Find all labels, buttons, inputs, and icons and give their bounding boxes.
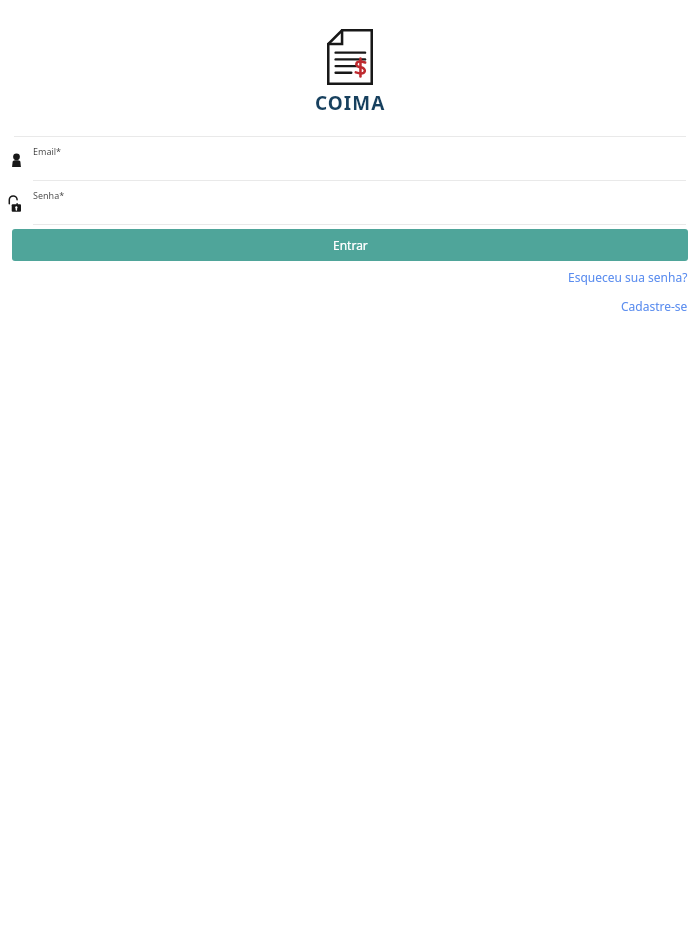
staticText: Cadastre-se [621,298,688,314]
button[interactable]: Esqueceu sua senha? [556,266,700,288]
staticText: Esqueceu sua senha? [568,269,688,285]
staticText: COIMA [315,90,386,116]
button[interactable]: Cadastre-se [609,295,700,317]
staticText: Senha* [33,189,65,201]
button[interactable]: Password [0,181,700,224]
button[interactable]: Entrar [12,229,688,261]
other: Email [0,137,33,180]
other: Password [0,181,33,224]
staticText: Email* [33,145,62,157]
button[interactable]: Email [0,137,700,180]
staticText: Entrar [333,237,368,253]
